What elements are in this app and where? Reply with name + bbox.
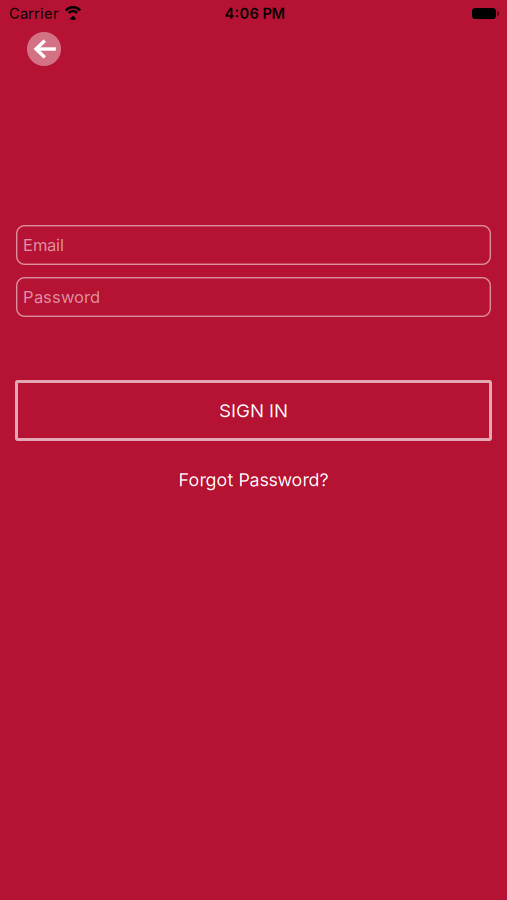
staticText: 4:06 PM	[224, 5, 285, 22]
staticText: Forgot Password?	[178, 469, 328, 491]
button[interactable]: Back	[27, 32, 61, 66]
button[interactable]: SIGN IN	[0, 380, 507, 441]
staticText: Carrier	[9, 5, 59, 22]
staticText: Password	[23, 287, 100, 307]
button[interactable]: Forgot Password?	[178, 469, 328, 491]
button[interactable]: Email	[0, 225, 507, 265]
staticText: Email	[23, 235, 64, 255]
button[interactable]: Password	[0, 277, 507, 317]
staticText: SIGN IN	[219, 399, 288, 421]
